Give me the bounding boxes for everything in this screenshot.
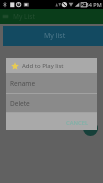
button[interactable]: CANCEL <box>66 119 88 127</box>
button[interactable]: Add <box>83 121 98 136</box>
button[interactable]: My list <box>3 26 103 46</box>
staticText: CANCEL <box>66 119 88 127</box>
staticText: Rename <box>10 79 36 88</box>
button[interactable]: Delete <box>6 94 97 112</box>
button[interactable]: Rename <box>6 73 97 93</box>
staticText: 2:34 PM <box>81 1 102 8</box>
button[interactable]: Add to Play list <box>6 58 97 73</box>
staticText: My list <box>44 31 66 41</box>
staticText: Delete <box>10 99 30 108</box>
staticText: My List <box>13 12 35 21</box>
button[interactable]: Menu <box>2 13 9 20</box>
staticText: Add to Play list <box>22 62 64 70</box>
